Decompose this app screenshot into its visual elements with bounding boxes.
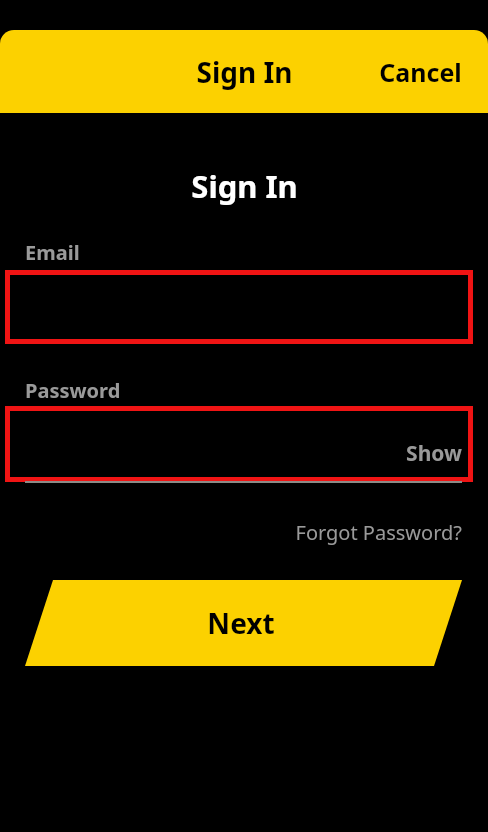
staticText: Sign In (196, 53, 293, 91)
button[interactable]: Cancel (366, 30, 474, 113)
button[interactable]: Show (380, 434, 462, 472)
staticText: Show (406, 439, 462, 468)
staticText: Forgot Password? (295, 519, 462, 546)
button[interactable]: Sign In (180, 30, 308, 113)
staticText: Next (207, 604, 275, 642)
staticText: Cancel (379, 55, 462, 89)
staticText: Email (25, 239, 80, 266)
staticText: Password (25, 377, 121, 404)
button[interactable]: Email input field (5, 270, 473, 344)
staticText: Sign In (191, 165, 298, 207)
button[interactable]: Forgot Password? (262, 512, 462, 552)
button[interactable]: Next (25, 580, 462, 666)
button[interactable]: Password input field (5, 406, 473, 482)
